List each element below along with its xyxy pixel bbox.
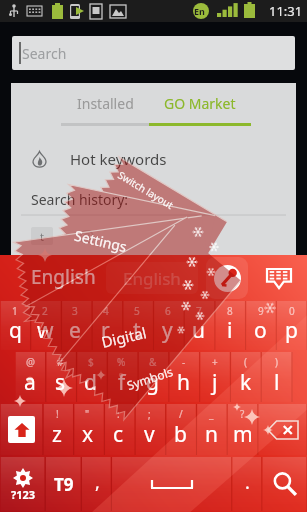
staticText: ) [275,355,278,369]
staticText: y [162,316,173,345]
staticText: g [146,368,159,397]
staticText: 9 [258,304,264,318]
button[interactable]: w [30,300,60,351]
button[interactable]: Hide keyboard [258,257,300,299]
staticText: English [31,264,96,290]
staticText: $ [88,355,94,369]
button[interactable]: o [245,300,276,351]
staticText: r [101,316,110,345]
button[interactable]: n [196,403,227,456]
staticText: u [192,316,205,345]
staticText: ; [148,407,151,421]
button[interactable]: t [121,300,152,351]
staticText: + [212,355,218,369]
staticText: c [113,420,124,449]
staticText: Hot keywords [70,149,167,169]
staticText: p [285,316,298,345]
staticText: & [149,355,157,369]
staticText: Installed [77,94,134,113]
staticText: 6 [165,304,171,318]
button[interactable]: c [103,403,134,456]
button[interactable]: Installed [61,83,149,123]
staticText: 4 [103,304,109,318]
staticText: x [82,420,94,449]
button[interactable]: Search [262,456,307,512]
button[interactable]: , [82,456,112,512]
staticText: 0 [289,304,295,318]
staticText: 8 [227,304,233,318]
button[interactable]: . [232,456,262,512]
staticText: f [118,368,126,397]
button[interactable]: Symbols and settings [0,456,46,512]
staticText: - [182,355,186,369]
button[interactable]: g [137,351,168,403]
staticText: GO Market [164,94,236,113]
button[interactable]: English [106,262,198,294]
staticText: % [117,355,126,369]
button[interactable]: T9 [46,456,82,512]
button[interactable]: h [168,351,199,403]
button[interactable]: f [106,351,137,403]
staticText: ? [240,407,245,421]
staticText: ! [56,407,59,421]
staticText: En [194,5,205,17]
staticText: Search [22,44,67,63]
button[interactable]: e [60,300,90,351]
button[interactable]: r [90,300,121,351]
button[interactable]: GO Market [149,83,251,123]
staticText: T9 [54,473,74,496]
button[interactable]: q [0,300,30,351]
button[interactable]: y [152,300,183,351]
staticText: . [245,470,250,495]
staticText: z [52,420,62,449]
button[interactable]: a [15,351,45,403]
button[interactable]: Search [12,36,295,70]
button[interactable]: p [276,300,307,351]
button[interactable]: v [134,403,165,456]
staticText: d [84,368,97,397]
button[interactable]: j [199,351,230,403]
staticText: i [227,316,233,345]
staticText: # [57,355,64,369]
staticText: v [144,420,155,449]
button[interactable]: k [230,351,261,403]
staticText: a [24,368,36,397]
staticText: 7 [196,304,202,318]
button[interactable]: Space [112,456,232,512]
button[interactable]: m [227,403,258,456]
staticText: ?123 [11,487,36,502]
button[interactable]: Backspace [258,403,307,456]
button[interactable]: t [31,227,53,245]
staticText: l [274,368,280,397]
button[interactable]: i [214,300,245,351]
staticText: j [212,368,218,397]
staticText: : [117,407,120,421]
button[interactable]: z [42,403,72,456]
staticText: _ [209,407,214,421]
staticText: / [179,407,183,421]
button[interactable]: l [261,351,292,403]
staticText: 11:31 [269,2,303,20]
staticText: t [40,229,44,244]
staticText: e [69,316,81,345]
staticText: @ [26,355,35,369]
button[interactable]: s [45,351,75,403]
staticText: Search history: [31,190,129,209]
staticText: w [37,316,54,345]
staticText: ( [244,355,247,369]
staticText: o [254,316,267,345]
staticText: English [123,267,181,290]
button[interactable]: d [75,351,106,403]
button[interactable]: u [183,300,214,351]
staticText: s [55,368,66,397]
staticText: h [177,368,190,397]
button[interactable]: x [72,403,103,456]
button[interactable]: b [165,403,196,456]
staticText: 2 [42,304,48,318]
button[interactable]: Voice input [206,257,248,299]
button[interactable]: Shift [0,403,42,456]
staticText: m [233,420,253,449]
staticText: 1 [12,304,18,318]
staticText: @ [79,224,95,247]
staticText: t [133,316,141,345]
